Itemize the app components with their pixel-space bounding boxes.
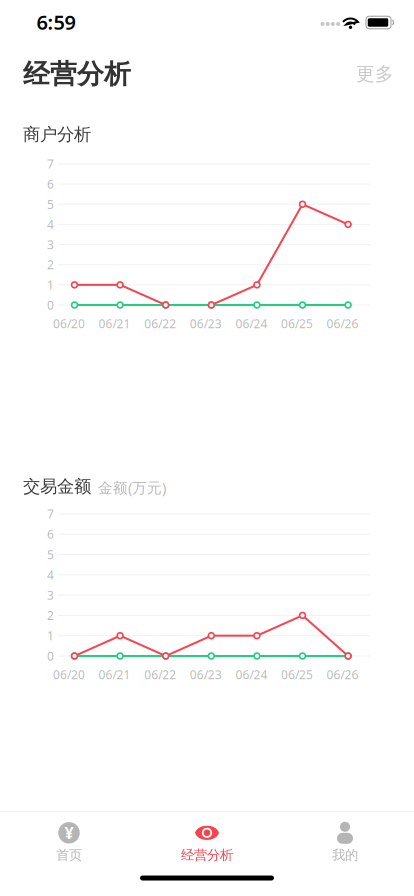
staticText: 5: [47, 546, 54, 562]
button[interactable]: 更多: [340, 59, 394, 89]
staticText: 商户分析: [23, 124, 91, 145]
staticText: 4: [47, 567, 54, 583]
staticText: 6: [47, 526, 54, 542]
staticText: 4: [47, 216, 54, 232]
staticText: 首页: [56, 847, 82, 863]
staticText: 06/23: [190, 315, 222, 331]
staticText: 1: [47, 277, 54, 293]
staticText: 06/20: [53, 666, 85, 682]
staticText: 金额(万元): [98, 478, 166, 497]
staticText: 1: [47, 628, 54, 644]
staticText: 2: [47, 607, 54, 623]
staticText: 06/26: [327, 315, 359, 331]
staticText: 06/21: [99, 315, 131, 331]
staticText: 更多: [356, 62, 394, 85]
staticText: 3: [47, 237, 54, 252]
staticText: 我的: [332, 847, 358, 863]
staticText: 2: [47, 257, 54, 273]
staticText: 3: [47, 587, 54, 603]
staticText: 经营分析: [23, 58, 131, 90]
staticText: 06/25: [281, 666, 313, 682]
staticText: 5: [47, 196, 54, 212]
button[interactable]: ¥: [0, 810, 138, 864]
staticText: 6: [47, 176, 54, 192]
staticText: 06/24: [235, 666, 267, 682]
staticText: 06/25: [281, 315, 313, 331]
staticText: 7: [47, 506, 54, 522]
staticText: 06/23: [190, 666, 222, 682]
button[interactable]: 经营分析: [138, 810, 276, 864]
button[interactable]: 我的: [276, 810, 414, 864]
staticText: 06/22: [144, 315, 176, 331]
staticText: 7: [47, 156, 54, 172]
staticText: 交易金额: [23, 476, 91, 497]
staticText: 经营分析: [181, 847, 233, 863]
staticText: 06/24: [235, 315, 267, 331]
staticText: 06/20: [53, 315, 85, 331]
staticText: 0: [47, 648, 54, 664]
staticText: 06/21: [99, 666, 131, 682]
staticText: 0: [47, 297, 54, 313]
staticText: 06/26: [327, 666, 359, 682]
staticText: 06/22: [144, 666, 176, 682]
staticText: 6:59: [36, 9, 75, 35]
staticText: ¥: [64, 822, 73, 843]
